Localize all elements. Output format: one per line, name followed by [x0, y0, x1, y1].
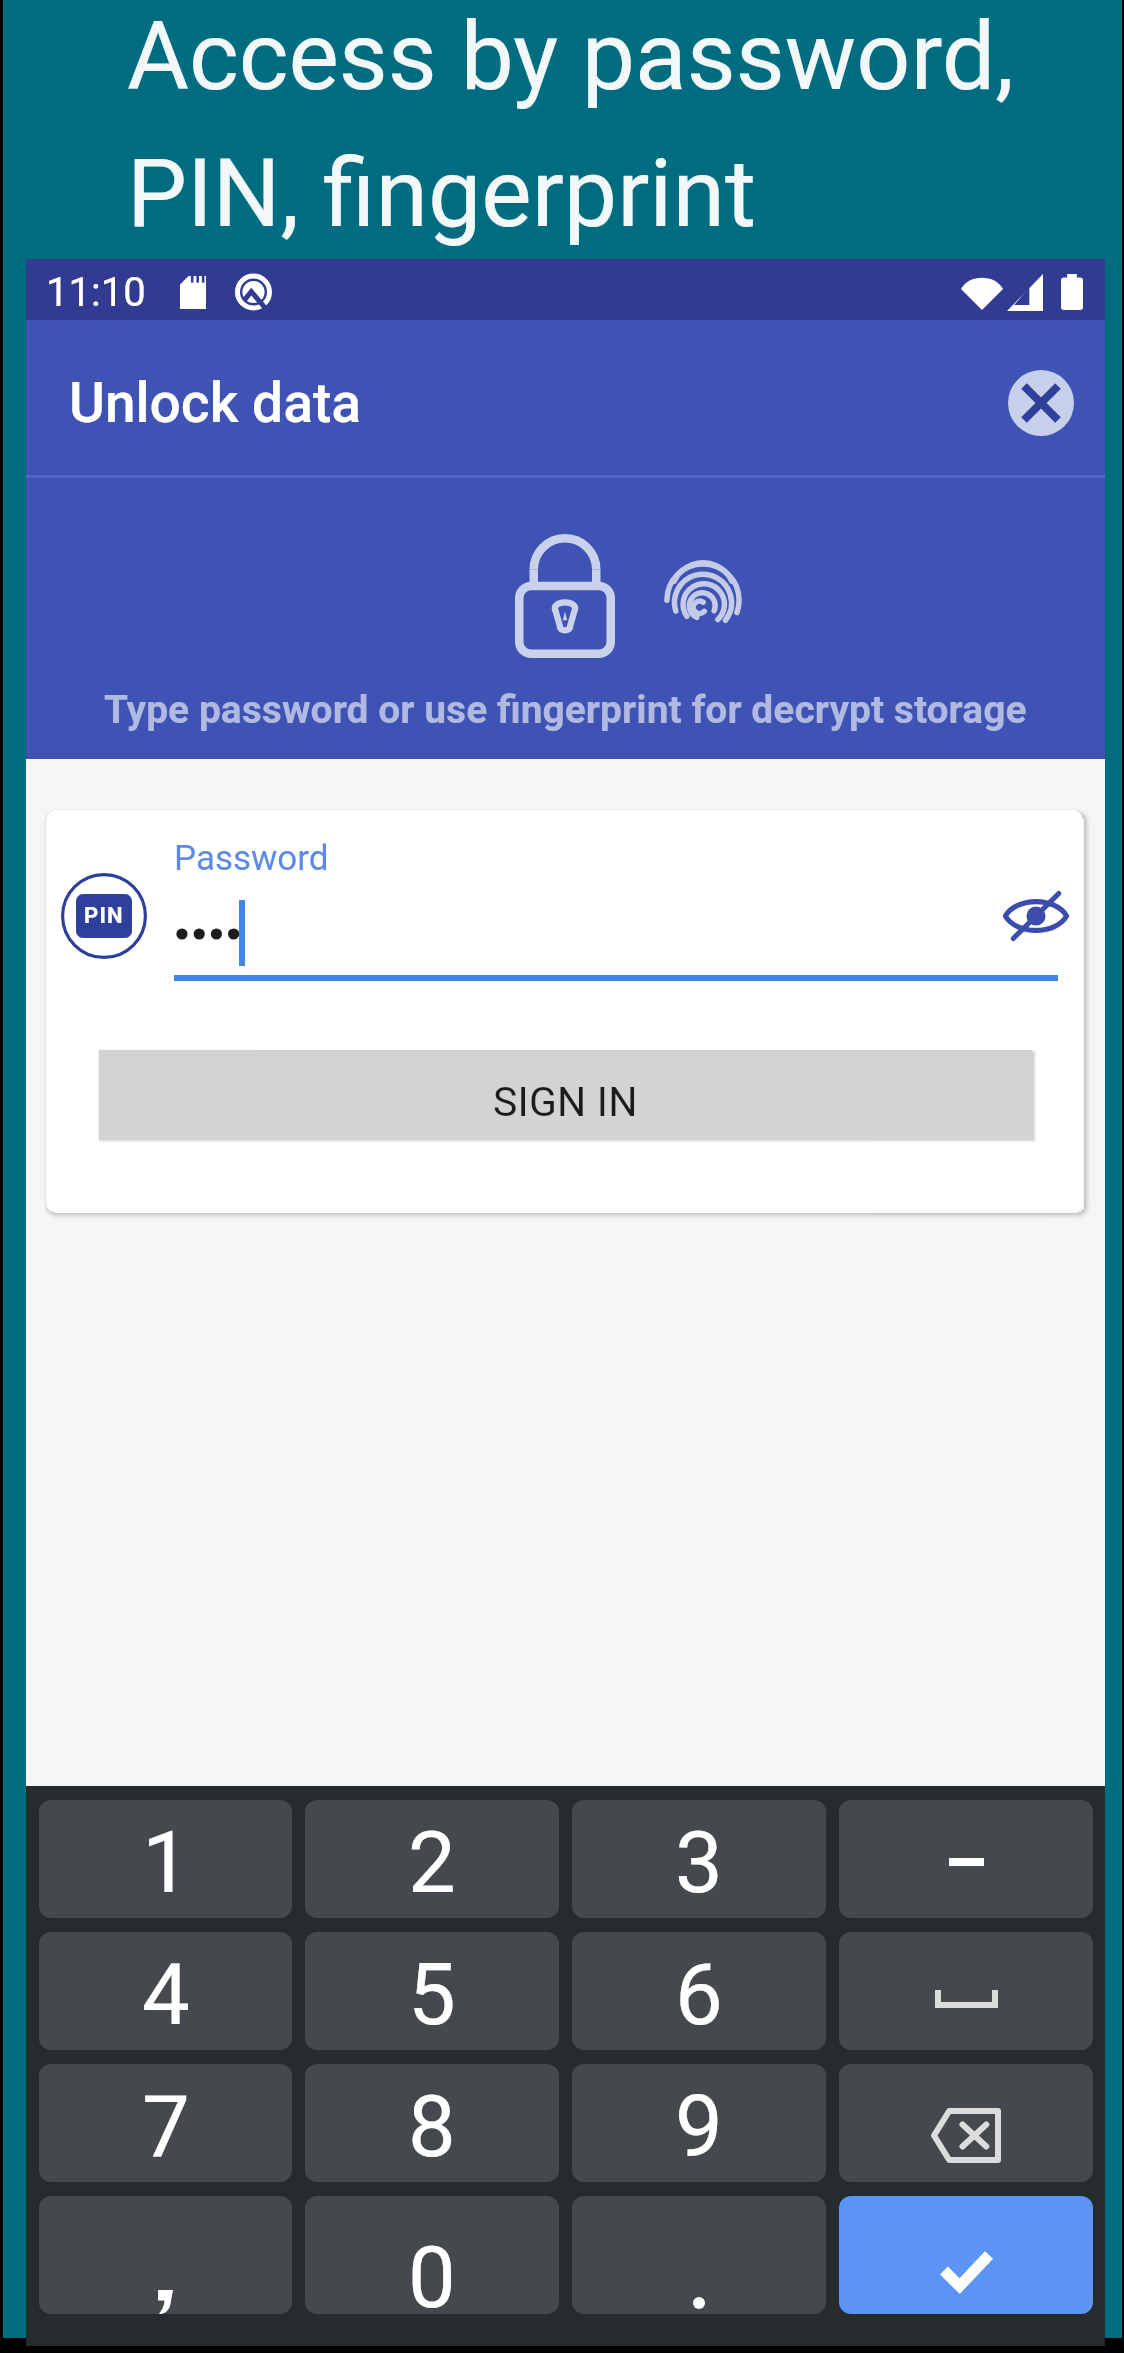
staticText: 3 [675, 1813, 723, 1913]
staticText: 2 [408, 1813, 456, 1913]
button[interactable]: 9 [572, 2064, 826, 2182]
staticText: Type password or use fingerprint for dec… [104, 687, 1027, 733]
staticText: SIGN IN [493, 1078, 638, 1126]
staticText: 4 [142, 1945, 190, 2045]
staticText: Unlock data [69, 371, 362, 435]
button[interactable]: 3 [572, 1800, 826, 1918]
staticText: 9 [675, 2077, 723, 2177]
staticText: 0 [408, 2228, 456, 2314]
staticText: 1 [142, 1813, 190, 1913]
staticText: 6 [675, 1945, 723, 2045]
button[interactable]: Show password [998, 878, 1074, 954]
button[interactable]: 0 [305, 2196, 559, 2314]
button[interactable]: Done [839, 2196, 1093, 2314]
staticText: Access by password, PIN, fingerprint [127, 1, 1015, 250]
staticText: Password [174, 838, 329, 879]
button[interactable]: Minus [839, 1800, 1093, 1918]
staticText: 11:10 [46, 269, 146, 316]
staticText: 7 [142, 2077, 190, 2177]
button[interactable]: 1 [39, 1800, 292, 1918]
button[interactable]: 4 [39, 1932, 292, 2050]
button[interactable]: PIN [61, 873, 147, 959]
button[interactable]: 8 [305, 2064, 559, 2182]
staticText: 5 [408, 1945, 456, 2045]
button[interactable]: Delete [839, 2064, 1093, 2182]
button[interactable]: Close [1008, 370, 1074, 436]
button[interactable] [572, 2196, 826, 2314]
button[interactable]: SIGN IN [99, 1050, 1032, 1140]
staticText: PIN [84, 903, 124, 929]
button[interactable]: 2 [305, 1800, 559, 1918]
staticText: 8 [408, 2077, 456, 2177]
button[interactable]: Space [839, 1932, 1093, 2050]
button[interactable]: 6 [572, 1932, 826, 2050]
button[interactable]: 5 [305, 1932, 559, 2050]
button[interactable] [39, 2196, 292, 2314]
button[interactable]: 7 [39, 2064, 292, 2182]
